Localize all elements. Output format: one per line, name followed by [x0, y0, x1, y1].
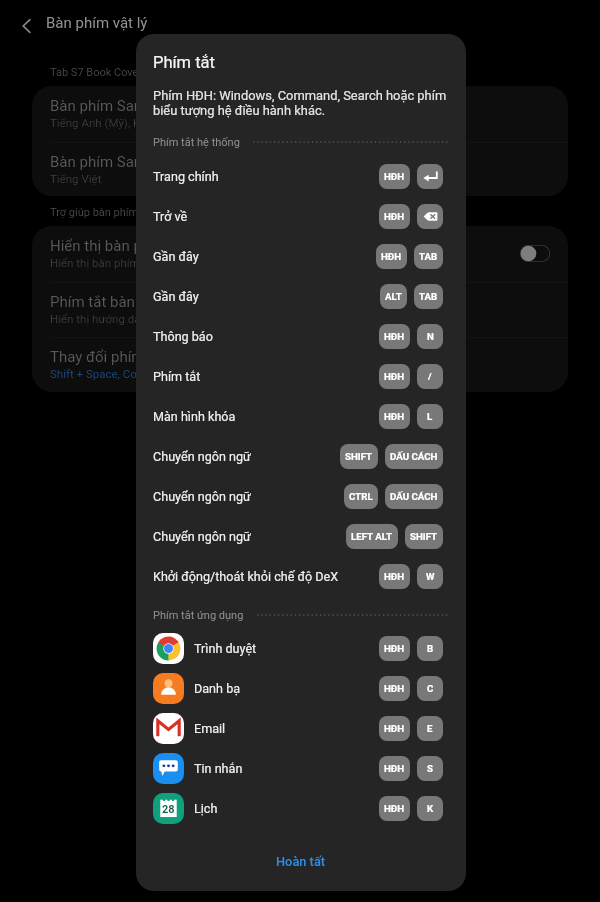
staticText: DẤU CÁCH: [390, 491, 438, 502]
staticText: TAB: [419, 251, 438, 262]
staticText: 28: [162, 803, 175, 816]
staticText: Hiển thị hướng dẫn phím tắt: [50, 312, 193, 325]
staticText: C: [427, 683, 434, 694]
staticText: Shift + Space, Control + Space: [50, 367, 204, 380]
staticText: HĐH: [384, 171, 405, 182]
staticText: Trợ giúp bàn phím: [50, 206, 139, 219]
button[interactable]: Chuyển ngôn ngữ: [136, 516, 466, 556]
staticText: Hoàn tất: [276, 854, 326, 869]
staticText: /: [428, 371, 432, 382]
staticText: TAB: [419, 291, 438, 302]
staticText: HĐH: [381, 251, 402, 262]
staticText: Gần đây: [153, 249, 199, 264]
staticText: Khởi động/thoát khỏi chế độ DeX: [153, 569, 339, 584]
staticText: Phím tắt: [153, 369, 201, 384]
staticText: Chuyển ngôn ngữ: [153, 489, 251, 504]
staticText: W: [426, 571, 435, 582]
button[interactable]: Khởi động/thoát khỏi chế độ DeX: [136, 556, 466, 596]
button[interactable]: Phím tắt: [136, 356, 466, 396]
staticText: Tab S7 Book Cover Keyboard: [50, 66, 191, 79]
button[interactable]: Bàn phím Samsung: [32, 142, 568, 196]
staticText: Phím tắt hệ thống: [153, 136, 240, 149]
staticText: Lịch: [194, 801, 218, 816]
staticText: Email: [194, 721, 226, 736]
staticText: HĐH: [384, 643, 405, 654]
staticText: HĐH: [384, 683, 405, 694]
button[interactable]: Back: [8, 8, 44, 44]
staticText: SHIFT: [345, 451, 373, 462]
staticText: Gần đây: [153, 289, 199, 304]
staticText: HĐH: [384, 331, 405, 342]
button[interactable]: Show virtual keyboard toggle: [520, 245, 550, 262]
staticText: Trở về: [153, 209, 188, 224]
staticText: K: [427, 803, 434, 814]
button[interactable]: Chuyển ngôn ngữ: [136, 476, 466, 516]
button[interactable]: Chuyển ngôn ngữ: [136, 436, 466, 476]
other: Backspace key: [417, 204, 443, 229]
staticText: Bàn phím vật lý: [46, 14, 148, 32]
staticText: Tin nhắn: [194, 761, 243, 776]
staticText: HĐH: [384, 571, 405, 582]
staticText: B: [427, 643, 434, 654]
staticText: Bàn phím Samsung: [50, 153, 180, 171]
staticText: Tiếng Anh (Mỹ), Kiểu Bàn phím mặc định: [50, 116, 258, 129]
staticText: HĐH: [384, 763, 405, 774]
staticText: Phím tắt: [153, 53, 215, 72]
button[interactable]: Thay đổi phím tắt: [32, 337, 568, 392]
staticText: Chuyển ngôn ngữ: [153, 529, 251, 544]
button[interactable]: Hiển thị bàn phím ảo: [32, 226, 568, 281]
staticText: Phím tắt ứng dụng: [153, 609, 244, 622]
staticText: HĐH: [384, 803, 405, 814]
button[interactable]: Phím tắt bàn phím: [32, 282, 568, 337]
staticText: CTRL: [349, 491, 373, 502]
button[interactable]: Thông báo: [136, 316, 466, 356]
staticText: ALT: [385, 291, 402, 302]
staticText: Phím HĐH: Windows, Command, Search hoặc …: [153, 88, 454, 118]
staticText: Bàn phím Samsung: [50, 97, 180, 115]
staticText: Thay đổi phím tắt: [50, 348, 167, 366]
staticText: Hiển thị bàn phím ảo: [50, 237, 188, 255]
button[interactable]: Trình duyệt: [136, 628, 466, 668]
staticText: L: [427, 411, 433, 422]
staticText: Phím tắt bàn phím: [50, 293, 173, 311]
staticText: HĐH: [384, 723, 405, 734]
staticText: Trình duyệt: [194, 641, 257, 656]
button[interactable]: Email: [136, 708, 466, 748]
button[interactable]: Trở về: [136, 196, 466, 236]
staticText: S: [427, 763, 433, 774]
staticText: Trang chính: [153, 169, 219, 184]
staticText: Danh bạ: [194, 681, 241, 696]
staticText: E: [427, 723, 433, 734]
button[interactable]: Tin nhắn: [136, 748, 466, 788]
button[interactable]: Trang chính: [136, 156, 466, 196]
staticText: Thông báo: [153, 329, 213, 344]
staticText: LEFT ALT: [351, 531, 393, 542]
staticText: DẤU CÁCH: [390, 451, 438, 462]
staticText: HĐH: [384, 371, 405, 382]
other: Enter key: [417, 164, 443, 189]
button[interactable]: Màn hình khóa: [136, 396, 466, 436]
staticText: SHIFT: [410, 531, 438, 542]
staticText: Chuyển ngôn ngữ: [153, 449, 251, 464]
staticText: N: [427, 331, 434, 342]
staticText: HĐH: [384, 211, 405, 222]
button[interactable]: 28: [136, 788, 466, 828]
button[interactable]: Gần đây: [136, 236, 466, 276]
button[interactable]: Danh bạ: [136, 668, 466, 708]
button[interactable]: Hoàn tất: [136, 841, 466, 882]
staticText: Tiếng Việt: [50, 172, 102, 185]
staticText: HĐH: [384, 411, 405, 422]
button[interactable]: Bàn phím Samsung: [32, 86, 568, 141]
button[interactable]: Gần đây: [136, 276, 466, 316]
staticText: Màn hình khóa: [153, 409, 236, 424]
staticText: Hiển thị bàn phím trên màn hình: [50, 256, 213, 269]
